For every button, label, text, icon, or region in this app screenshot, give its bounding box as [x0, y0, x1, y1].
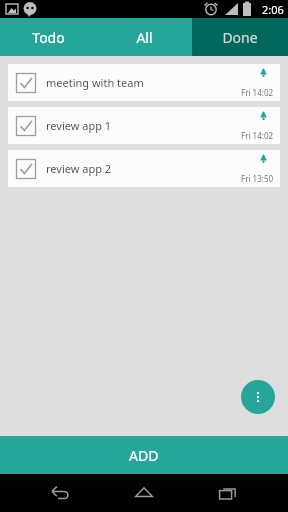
button[interactable]: review app 2 — [8, 150, 280, 187]
staticText: Todo — [32, 28, 65, 47]
staticText: All — [136, 28, 153, 47]
button[interactable]: Home — [120, 474, 168, 512]
staticText: review app 1 — [46, 118, 112, 133]
staticText: review app 2 — [46, 161, 112, 176]
button[interactable]: Recents — [204, 474, 252, 512]
staticText: Done — [222, 28, 258, 47]
button[interactable]: All — [96, 18, 192, 56]
staticText: meeting with team — [46, 75, 144, 90]
staticText: Fri 14:02 — [241, 87, 274, 98]
staticText: 2:06 — [262, 2, 284, 17]
staticText: Fri 13:50 — [241, 173, 274, 184]
staticText: ADD — [129, 446, 159, 465]
button[interactable]: Back — [36, 474, 84, 512]
button[interactable]: review app 1 — [8, 107, 280, 144]
button[interactable]: ADD — [0, 436, 288, 474]
button[interactable]: meeting with team — [8, 64, 280, 101]
button[interactable]: Done — [192, 18, 288, 56]
staticText: Fri 14:02 — [241, 130, 274, 141]
button[interactable]: Todo — [0, 18, 96, 56]
button[interactable]: More options — [241, 380, 275, 414]
